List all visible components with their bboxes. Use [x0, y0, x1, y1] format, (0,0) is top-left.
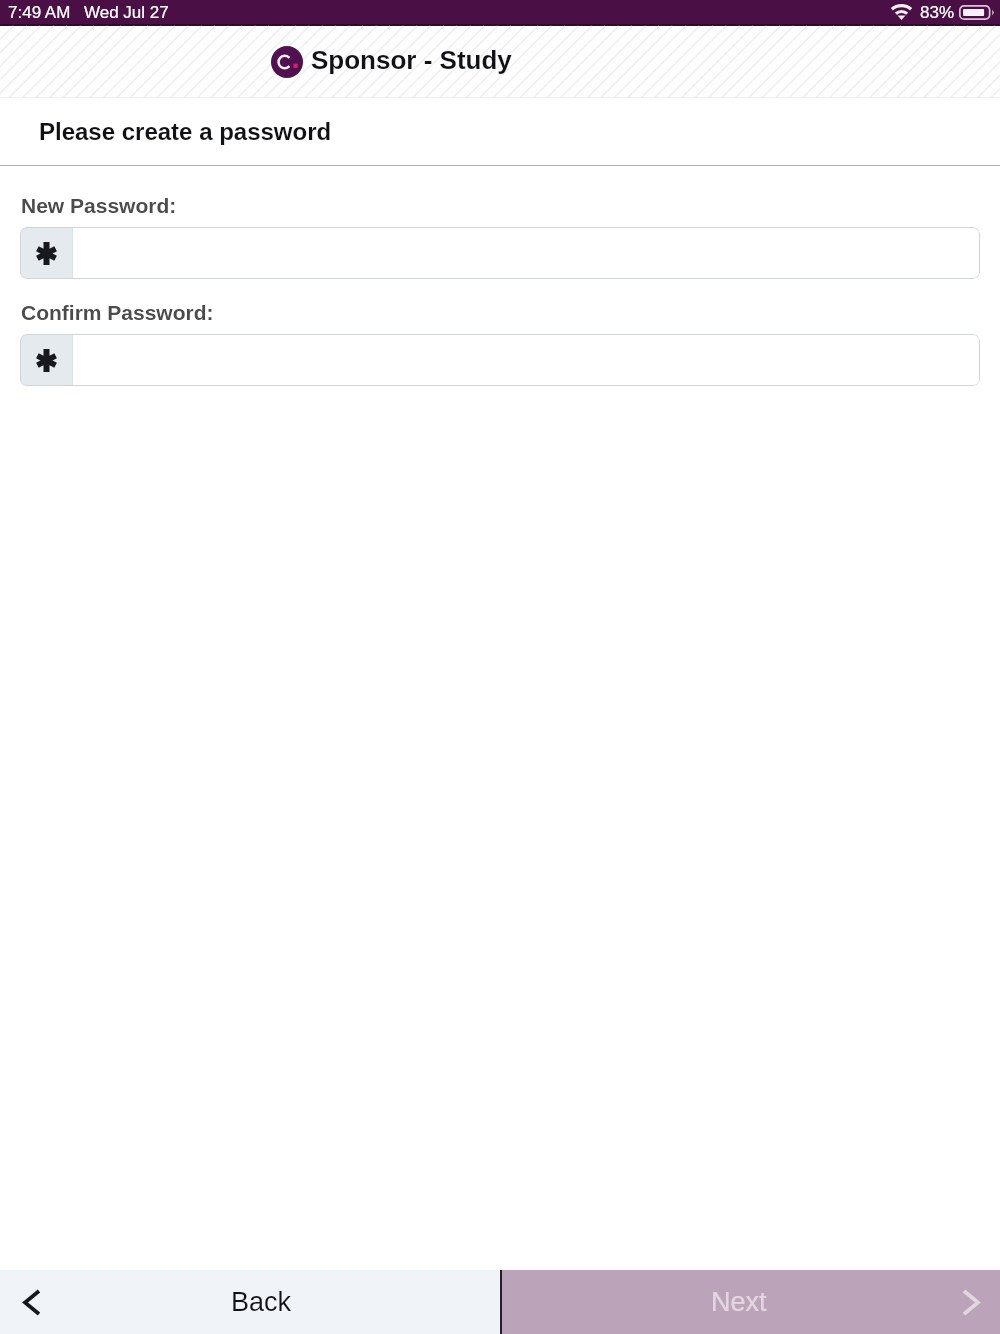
staticText: Wed Jul 27 — [84, 3, 169, 22]
button[interactable]: Back — [0, 1270, 500, 1334]
other: Back — [25, 1291, 39, 1314]
staticText: 83% — [920, 3, 955, 22]
other: Next — [964, 1291, 978, 1314]
button[interactable] — [20, 227, 980, 279]
staticText: 7:49 AM — [8, 3, 71, 22]
staticText: Please create a password — [39, 118, 332, 145]
staticText: Confirm Password: — [21, 301, 214, 324]
staticText: Sponsor - Study — [311, 45, 512, 74]
button[interactable] — [20, 334, 980, 386]
other: Battery 83 percent — [959, 5, 994, 20]
staticText: Back — [231, 1287, 292, 1317]
button[interactable]: Next — [500, 1270, 1000, 1334]
staticText: New Password: — [21, 194, 177, 217]
other: Wi-Fi — [891, 4, 912, 20]
staticText: Next — [711, 1287, 767, 1317]
